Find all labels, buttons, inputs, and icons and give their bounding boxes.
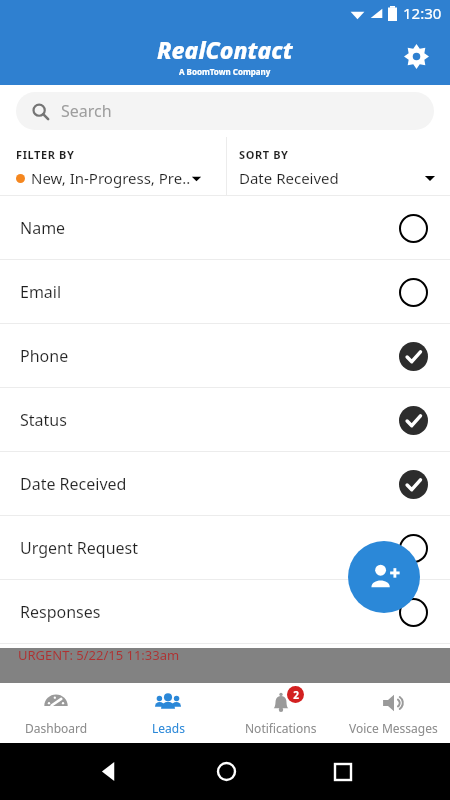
staticText: FILTER BY [16,147,75,162]
staticText: Date Received [239,168,339,188]
button[interactable]: Dashboard [0,683,112,743]
staticText: 2 [293,688,299,702]
staticText: Leads [152,720,185,736]
button[interactable]: Add lead [348,541,420,613]
staticText: Dashboard [25,720,88,736]
button[interactable]: Voice Messages [337,683,450,743]
staticText: Status [20,409,67,431]
button[interactable]: Date Received [0,452,450,516]
staticText: New, In-Progress, Pre.. [31,168,191,188]
button[interactable]: FILTER BY [0,137,226,196]
button[interactable]: Status [0,388,450,452]
button[interactable]: SORT BY [227,137,450,196]
button[interactable]: Phone [0,324,450,388]
staticText: Email [20,281,62,303]
button[interactable]: Email [0,260,450,324]
button[interactable]: Search [16,92,434,130]
staticText: Search [61,100,112,122]
button[interactable]: Settings [396,36,436,76]
staticText: URGENT: 5/22/15 11:33am [18,646,180,664]
staticText: Date Received [20,473,127,495]
button[interactable]: Name [0,196,450,260]
staticText: Phone [20,345,69,367]
staticText: Responses [20,601,101,623]
staticText: Urgent Request [20,537,139,559]
button[interactable]: Leads [112,683,224,743]
button[interactable]: 2 [224,683,337,743]
staticText: SORT BY [239,147,289,162]
staticText: Name [20,217,66,239]
staticText: Voice Messages [349,720,438,736]
button[interactable]: Urgent Request [0,516,450,580]
staticText: RealContact [157,34,293,65]
staticText: Notifications [245,720,317,736]
button[interactable]: Responses [0,580,450,644]
staticText: A BoomTown Company [179,66,271,77]
staticText: 12:30 [403,3,442,23]
